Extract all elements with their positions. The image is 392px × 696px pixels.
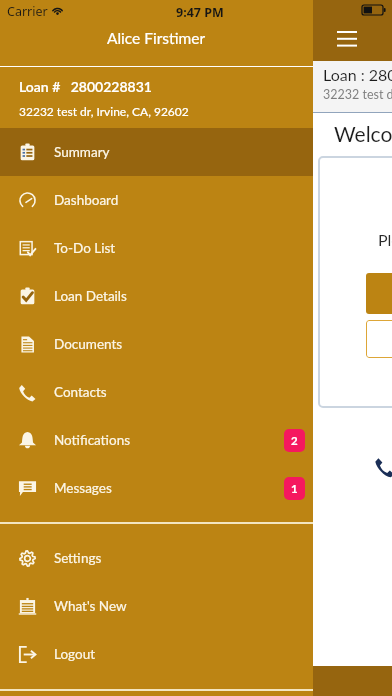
- button[interactable]: Make a Payment: [366, 273, 392, 314]
- button[interactable]: Logout: [0, 630, 313, 678]
- button[interactable]: Dashboard: [0, 176, 313, 224]
- staticText: Loan Details: [54, 288, 127, 304]
- button[interactable]: To-Do List: [0, 224, 313, 272]
- staticText: Dashboard: [54, 192, 119, 208]
- button[interactable]: What's New: [0, 582, 313, 630]
- button[interactable]: Contacts: [0, 368, 313, 416]
- button[interactable]: View Details: [366, 320, 392, 358]
- button[interactable]: Notifications: [0, 416, 313, 464]
- staticText: Contacts: [54, 384, 107, 400]
- staticText: Documents: [54, 336, 123, 352]
- button[interactable]: Settings: [0, 534, 313, 582]
- staticText: Carrier: [7, 3, 48, 20]
- button[interactable]: Messages: [0, 464, 313, 512]
- staticText: Notifications: [54, 432, 131, 448]
- staticText: Welcome Alice Firstimer: [334, 121, 392, 146]
- button[interactable]: Summary: [0, 128, 313, 176]
- other: Call: [374, 456, 392, 478]
- staticText: Messages: [54, 480, 112, 496]
- staticText: Loan : 2800228831: [323, 65, 392, 84]
- staticText: Summary: [54, 144, 110, 160]
- staticText: Loan # 2800228831: [19, 78, 152, 95]
- button[interactable]: Call: [374, 452, 392, 482]
- staticText: 32232 test dr, Irvine, CA, 92602: [323, 87, 392, 102]
- staticText: Please choose an action below: [378, 230, 392, 249]
- button[interactable]: Loan Details: [0, 272, 313, 320]
- staticText: What's New: [54, 598, 127, 614]
- staticText: Logout: [54, 646, 95, 662]
- staticText: To-Do List: [54, 240, 116, 256]
- staticText: 1: [291, 482, 298, 496]
- staticText: 32232 test dr, Irvine, CA, 92602: [19, 104, 189, 118]
- button[interactable]: Documents: [0, 320, 313, 368]
- staticText: Settings: [54, 550, 102, 566]
- staticText: 9:47 PM: [176, 4, 224, 21]
- staticText: 2: [291, 434, 298, 448]
- button[interactable]: Open navigation menu: [331, 24, 363, 50]
- staticText: Alice Firstimer: [107, 29, 206, 48]
